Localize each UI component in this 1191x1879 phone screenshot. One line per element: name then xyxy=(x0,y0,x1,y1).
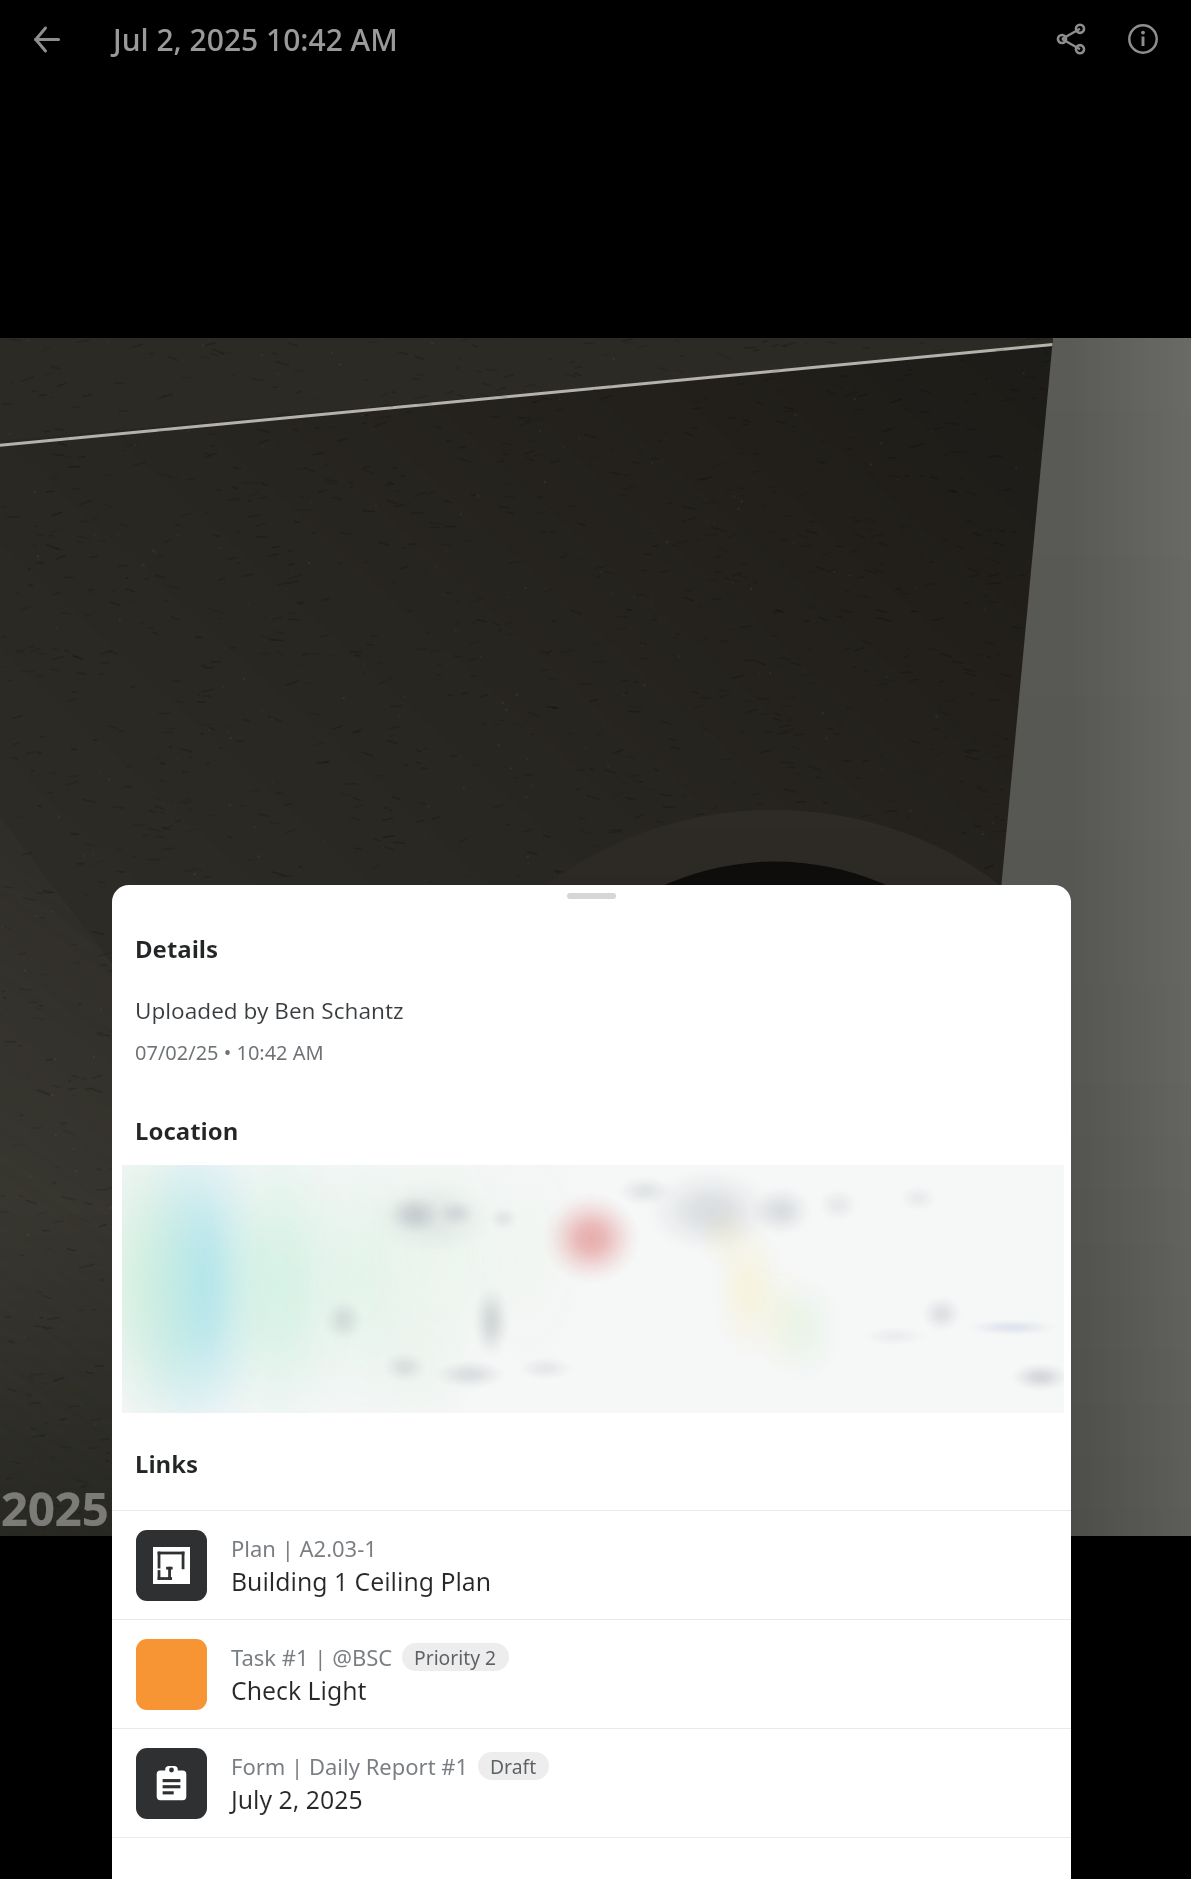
button[interactable]: Open location map xyxy=(122,1165,1064,1413)
staticText: Form | Daily Report #1 xyxy=(231,1751,469,1781)
button[interactable]: Plan | A2.03-1 xyxy=(112,1511,1071,1619)
staticText: Building 1 Ceiling Plan xyxy=(231,1564,492,1598)
staticText: Check Light xyxy=(231,1673,367,1707)
staticText: 2025 xyxy=(1,1476,109,1540)
button[interactable]: Form | Daily Report #1 xyxy=(112,1729,1071,1837)
staticText: Draft xyxy=(490,1753,537,1779)
button[interactable]: Info xyxy=(1109,5,1177,73)
button[interactable]: Share xyxy=(1037,5,1105,73)
staticText: 07/02/25 • 10:42 AM xyxy=(135,1039,324,1066)
staticText: Plan | A2.03-1 xyxy=(231,1533,377,1563)
staticText: Jul 2, 2025 10:42 AM xyxy=(113,19,398,60)
button[interactable]: Task #1 | @BSC xyxy=(112,1620,1071,1728)
staticText: Priority 2 xyxy=(414,1644,497,1670)
staticText: Details xyxy=(135,932,219,965)
staticText: Task #1 | @BSC xyxy=(231,1642,393,1672)
staticText: July 2, 2025 xyxy=(231,1782,363,1816)
staticText: Uploaded by Ben Schantz xyxy=(135,995,404,1026)
button[interactable]: Back xyxy=(12,5,80,73)
staticText: Links xyxy=(135,1447,199,1480)
staticText: Location xyxy=(135,1114,239,1147)
